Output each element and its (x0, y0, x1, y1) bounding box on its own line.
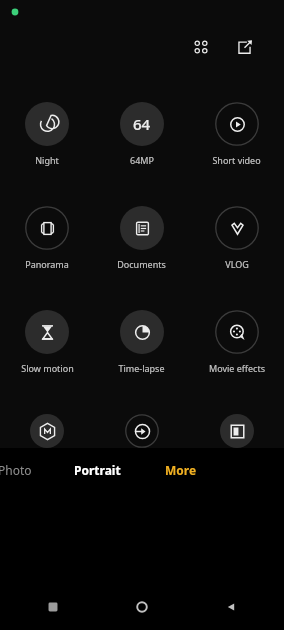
button[interactable]: Dual video (189, 414, 284, 448)
button[interactable]: Movie effects (189, 310, 284, 374)
button[interactable]: Portrait (64, 454, 131, 486)
button[interactable]: Slow motion (0, 310, 94, 374)
staticText: Time-lapse (118, 362, 165, 374)
staticText: Movie effects (209, 362, 265, 374)
staticText: Slow motion (21, 362, 74, 374)
button[interactable]: VLOG (189, 206, 284, 270)
button[interactable]: Photo (0, 454, 42, 486)
button[interactable]: Panorama (0, 206, 94, 270)
button[interactable]: Edit modes (230, 33, 258, 61)
staticText: 64MP (130, 154, 154, 166)
staticText: More (165, 462, 197, 478)
button[interactable]: Modes grid (187, 33, 215, 61)
staticText: Panorama (25, 258, 69, 270)
button[interactable]: Short video (189, 102, 284, 166)
staticText: Short video (212, 154, 261, 166)
button[interactable]: 64 (94, 102, 189, 166)
button[interactable]: Recents (36, 590, 70, 624)
staticText: Documents (117, 258, 166, 270)
staticText: 64 (133, 114, 151, 134)
button[interactable]: Home (125, 590, 159, 624)
button[interactable]: Back (214, 590, 248, 624)
button[interactable]: Time-lapse (94, 310, 189, 374)
staticText: Portrait (74, 462, 121, 478)
staticText: Night (35, 154, 59, 166)
button[interactable]: AI watermark (0, 414, 94, 448)
button[interactable]: More (155, 454, 207, 486)
button[interactable]: Long exposure (94, 414, 189, 448)
button[interactable]: Documents (94, 206, 189, 270)
button[interactable]: Night (0, 102, 94, 166)
staticText: VLOG (225, 258, 249, 270)
staticText: Photo (0, 462, 32, 478)
